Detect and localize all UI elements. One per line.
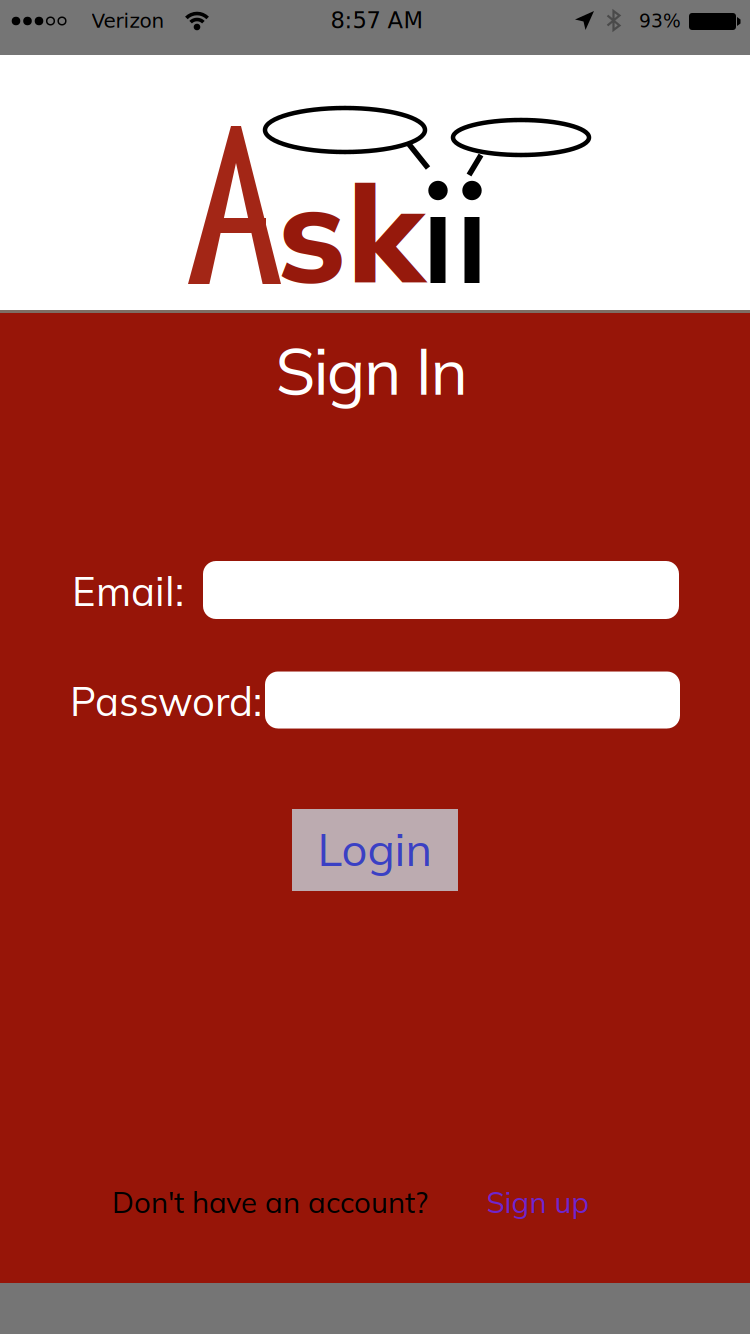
staticText: Sign In bbox=[275, 330, 469, 411]
button[interactable]: Email text field bbox=[203, 561, 679, 619]
staticText: Don't have an account? bbox=[112, 1184, 428, 1220]
staticText: Login bbox=[317, 821, 432, 877]
staticText: Sign up bbox=[486, 1184, 589, 1220]
staticText: Password: bbox=[70, 676, 262, 726]
button[interactable]: Password text field bbox=[265, 671, 680, 728]
staticText: Email: bbox=[72, 566, 184, 616]
button[interactable]: Sign up bbox=[486, 1184, 589, 1220]
staticText: sk bbox=[277, 146, 424, 317]
staticText: Verizon bbox=[91, 9, 164, 32]
staticText: 8:57 AM bbox=[330, 7, 423, 33]
button[interactable]: Login bbox=[292, 809, 458, 891]
staticText: 93% bbox=[639, 10, 681, 32]
